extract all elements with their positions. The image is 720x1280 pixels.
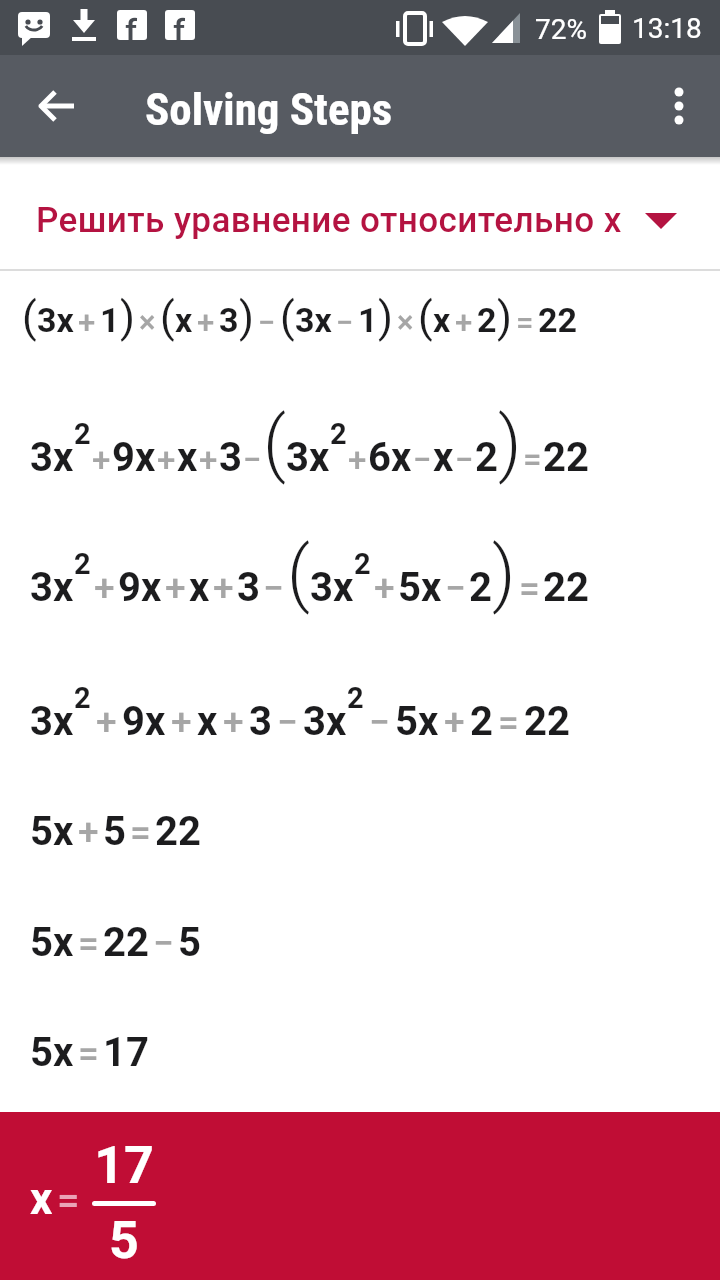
staticText: +: [213, 567, 234, 610]
staticText: 5x: [30, 919, 74, 966]
staticText: 2: [469, 564, 492, 611]
staticText: 3x: [30, 564, 74, 611]
staticText: ): [239, 292, 254, 342]
staticText: 2: [475, 434, 498, 481]
staticText: −: [455, 440, 474, 479]
button[interactable]: [648, 74, 710, 138]
staticText: x: [197, 698, 218, 745]
staticText: =: [523, 440, 542, 479]
staticText: ): [120, 292, 135, 342]
staticText: 17: [92, 1135, 156, 1196]
staticText: 22: [103, 919, 149, 966]
staticText: =: [519, 567, 540, 610]
staticText: +: [171, 701, 192, 744]
staticText: 2: [354, 547, 371, 581]
staticText: −: [263, 567, 284, 610]
staticText: 2: [477, 300, 497, 340]
button[interactable]: [26, 74, 90, 138]
staticText: Solving Steps: [145, 83, 393, 136]
staticText: 2: [74, 417, 91, 451]
staticText: =: [57, 1177, 80, 1224]
staticText: −: [336, 304, 354, 340]
staticText: 1: [358, 300, 378, 340]
staticText: f: [125, 11, 138, 51]
staticText: =: [516, 304, 534, 340]
staticText: x: [175, 300, 193, 340]
staticText: x: [433, 434, 454, 481]
staticText: +: [78, 811, 99, 854]
staticText: 9x: [122, 698, 166, 745]
staticText: 3x: [286, 434, 330, 481]
staticText: ×: [139, 304, 156, 340]
staticText: +: [455, 304, 473, 340]
staticText: (: [22, 292, 37, 342]
staticText: 3x: [30, 698, 74, 745]
staticText: 5: [92, 1210, 156, 1271]
staticText: 9x: [112, 434, 156, 481]
staticText: 5x: [30, 808, 74, 855]
staticText: 5: [103, 808, 126, 855]
staticText: 9x: [118, 564, 162, 611]
staticText: (: [418, 292, 433, 342]
staticText: +: [197, 304, 215, 340]
staticText: +: [444, 701, 465, 744]
staticText: +: [157, 440, 176, 479]
staticText: +: [165, 567, 186, 610]
staticText: Решить уравнение относительно x: [36, 200, 622, 241]
staticText: 22: [543, 434, 589, 481]
staticText: 22: [155, 808, 201, 855]
staticText: −: [243, 440, 262, 479]
staticText: 5x: [395, 698, 439, 745]
staticText: 17: [103, 1029, 149, 1076]
staticText: −: [369, 701, 390, 744]
staticText: +: [96, 701, 117, 744]
staticText: +: [199, 440, 218, 479]
staticText: x: [433, 300, 451, 340]
staticText: 2: [330, 417, 347, 451]
staticText: +: [374, 567, 395, 610]
staticText: ×: [397, 304, 414, 340]
staticText: 3x: [295, 300, 332, 340]
staticText: (: [160, 292, 175, 342]
staticText: 22: [538, 300, 578, 340]
staticText: 6x: [368, 434, 412, 481]
staticText: (: [287, 531, 310, 615]
staticText: −: [153, 922, 174, 965]
staticText: +: [223, 701, 244, 744]
staticText: x: [177, 434, 198, 481]
button[interactable]: Решить уравнение относительно x: [0, 165, 720, 269]
staticText: =: [78, 1032, 99, 1075]
staticText: =: [498, 701, 519, 744]
staticText: −: [258, 304, 276, 340]
staticText: +: [348, 440, 367, 479]
staticText: =: [78, 922, 99, 965]
staticText: f: [173, 11, 186, 51]
staticText: x: [189, 564, 210, 611]
staticText: +: [92, 440, 111, 479]
staticText: 3x: [310, 564, 354, 611]
staticText: ): [492, 531, 516, 615]
staticText: 2: [470, 698, 493, 745]
staticText: 22: [543, 564, 589, 611]
staticText: 2: [74, 547, 91, 581]
staticText: 3: [237, 564, 260, 611]
staticText: (: [263, 401, 286, 485]
staticText: −: [445, 567, 466, 610]
staticText: x: [30, 1173, 53, 1225]
staticText: 2: [74, 681, 91, 715]
staticText: 1: [100, 300, 120, 340]
staticText: +: [78, 304, 96, 340]
staticText: 72%: [535, 13, 587, 46]
staticText: 3x: [303, 698, 347, 745]
staticText: 3x: [30, 434, 74, 481]
staticText: (: [280, 292, 295, 342]
staticText: ): [378, 292, 393, 342]
staticText: −: [277, 701, 298, 744]
staticText: 3x: [37, 300, 74, 340]
staticText: ): [497, 292, 512, 342]
staticText: −: [413, 440, 432, 479]
staticText: 3: [219, 300, 239, 340]
staticText: 3: [249, 698, 272, 745]
staticText: 3: [219, 434, 242, 481]
staticText: ): [498, 401, 522, 485]
